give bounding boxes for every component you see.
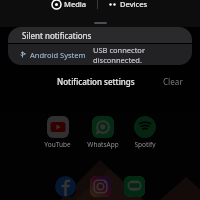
staticText: Silent notifications	[22, 30, 92, 41]
button[interactable]: Instagram	[90, 176, 111, 197]
staticText: Android System	[30, 50, 86, 60]
staticText: Notification settings	[57, 76, 135, 87]
staticText: WhatsApp	[87, 140, 119, 149]
staticText: Devices	[120, 0, 148, 9]
staticText: YouTube	[44, 140, 71, 149]
staticText: Clear	[163, 76, 183, 87]
button[interactable]: LINE	[124, 176, 145, 197]
button[interactable]: Clear	[158, 74, 188, 89]
button[interactable]: Media	[49, 0, 90, 11]
button[interactable]: Spotify	[134, 116, 156, 149]
button[interactable]: Silent notifications	[8, 27, 192, 43]
button[interactable]: Devices	[105, 0, 151, 11]
staticText: Media	[64, 0, 87, 9]
button[interactable]: Android System	[8, 44, 192, 65]
button[interactable]: YouTube	[44, 116, 71, 149]
button[interactable]	[94, 22, 107, 24]
button[interactable]: Facebook	[55, 176, 76, 197]
staticText: USB connector disconnected.	[93, 45, 181, 65]
button[interactable]: WhatsApp	[87, 116, 119, 149]
button[interactable]: Notification settings	[52, 74, 140, 89]
staticText: Spotify	[134, 140, 156, 149]
